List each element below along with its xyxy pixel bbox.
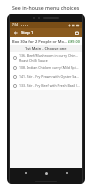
button[interactable]: Cart [73,29,80,36]
staticText: 136. Beef/Mushroom in curry Chinese [19,53,80,58]
button[interactable]: 141. Stir - Fry Prawn with Oyster Sauce [9,72,83,81]
button[interactable]: Back [12,29,19,36]
button[interactable]: Back [22,169,30,177]
staticText: Roast Chilli Sauce [19,58,48,63]
button[interactable]: 136. Beef/Mushroom in curry Chinese [9,52,83,63]
staticText: 133. Stir - Fry Beef with Fresh Basil (H… [19,83,80,88]
staticText: Step 1 [21,30,34,36]
staticText: 108. Indian Chicken curry (Mild Spicy) [19,65,80,70]
button[interactable]: Recents [63,169,71,177]
button[interactable]: Home [42,169,50,177]
button[interactable]: Box 30a for 2 People or More [9,37,83,45]
staticText: See in-house menu choices [12,4,80,11]
staticText: 7:14 [12,23,19,27]
staticText: Box 30a for 2 People or More [12,39,68,44]
staticText: 1st Main - Choose one [25,46,67,51]
button[interactable]: 108. Indian Chicken curry (Mild Spicy) [9,63,83,72]
staticText: £89.00 [68,39,80,44]
button[interactable]: 133. Stir - Fry Beef with Fresh Basil (H… [9,81,83,90]
staticText: 141. Stir - Fry Prawn with Oyster Sauce [19,74,80,79]
